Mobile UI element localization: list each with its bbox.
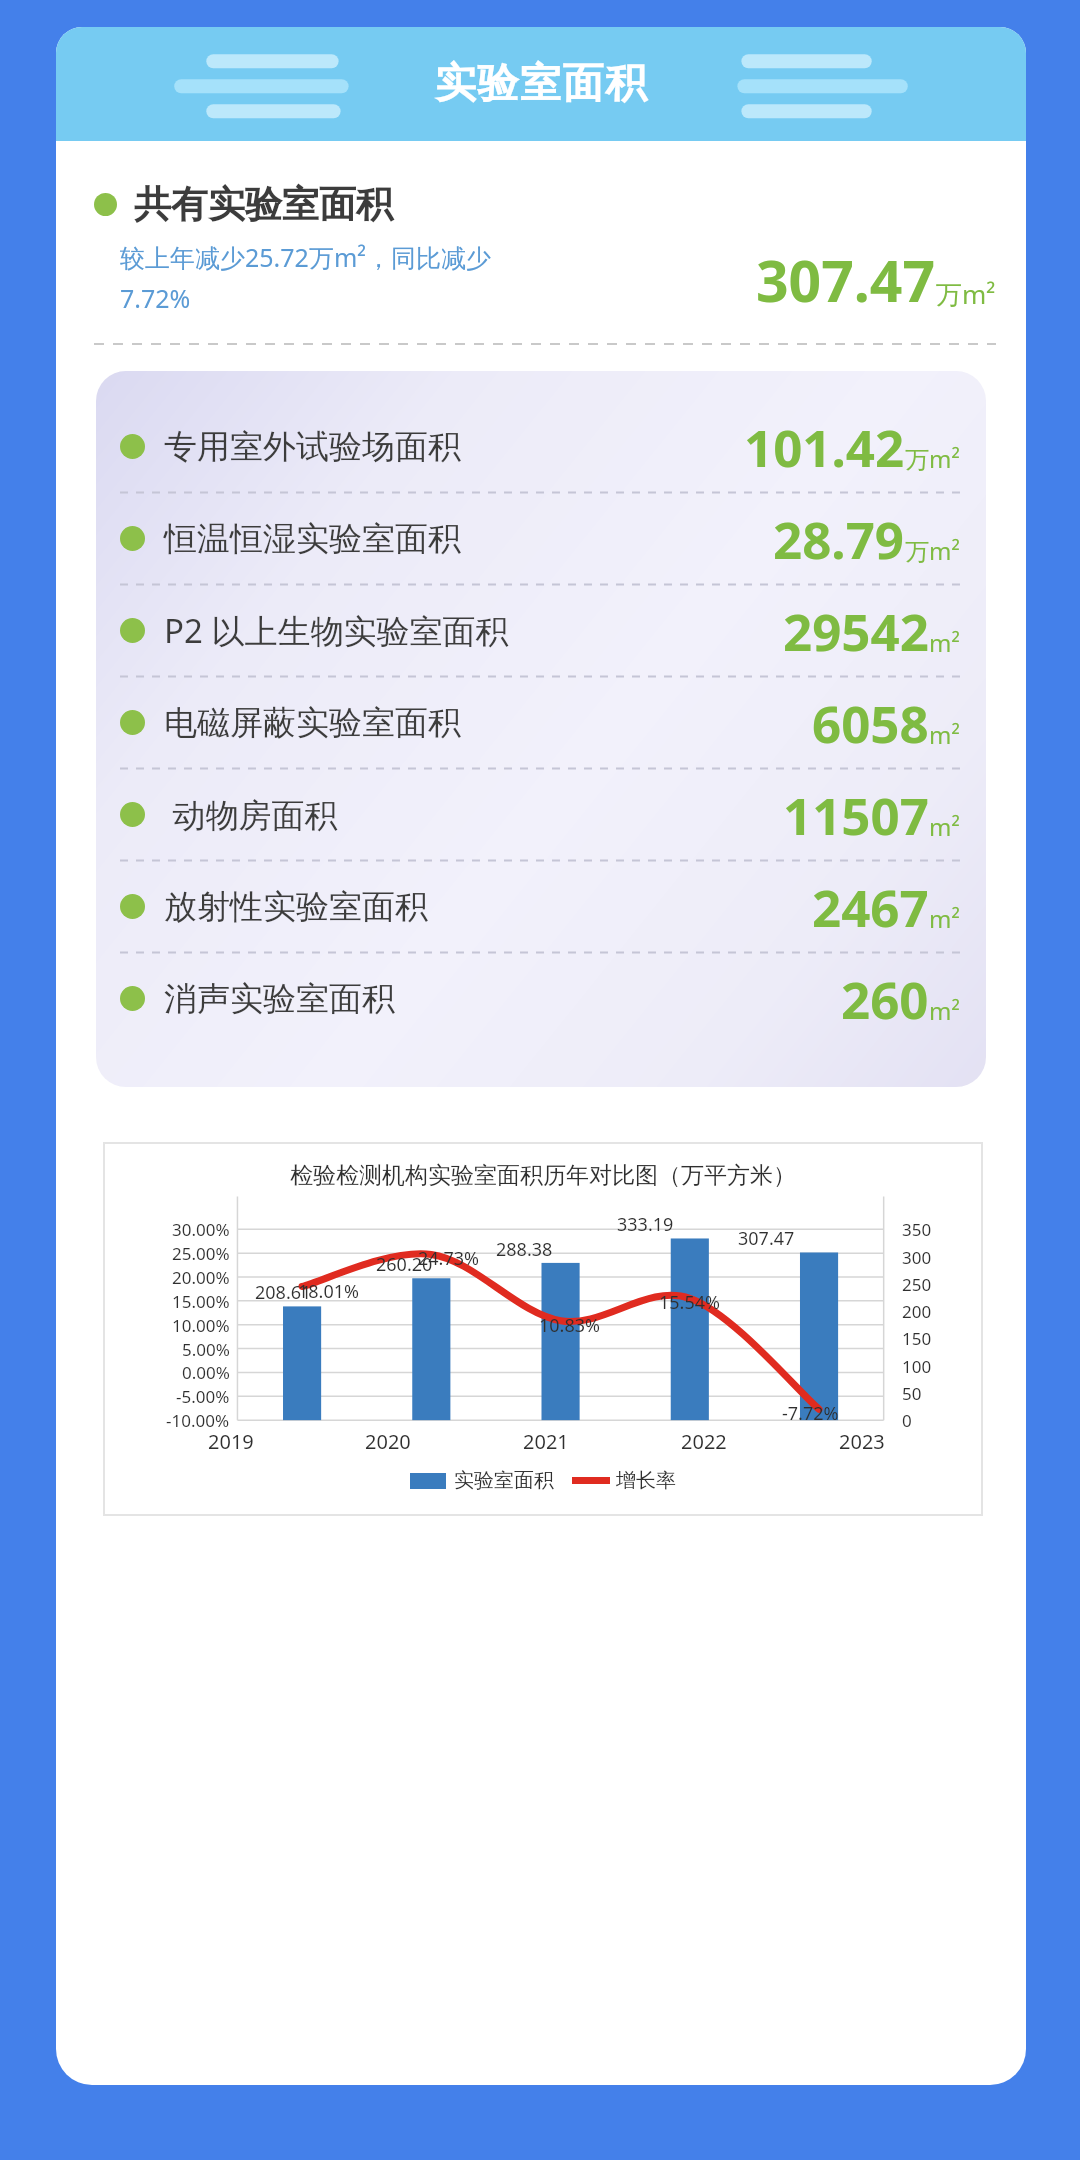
staticText: 307.47 (738, 1226, 795, 1251)
staticText: 29542 (783, 596, 929, 665)
staticText: 较上年减少25.72万m²，同比减少7.72% (120, 240, 512, 315)
staticText: 10.83% (539, 1313, 600, 1338)
staticText: 260 (841, 964, 929, 1033)
staticText: 恒温恒湿实验室面积 (164, 518, 461, 560)
staticText: 实验室面积 (435, 58, 648, 110)
staticText: 300 (902, 1246, 932, 1269)
button[interactable]: 消声实验室面积 (120, 957, 960, 1040)
staticText: 2022 (681, 1428, 727, 1455)
staticText: 电磁屏蔽实验室面积 (164, 702, 461, 744)
staticText: 2467 (812, 872, 929, 941)
staticText: 增长率 (616, 1468, 676, 1493)
staticText: m² (929, 810, 960, 843)
staticText: 15.00% (172, 1290, 230, 1313)
staticText: 动物房面积 (164, 792, 338, 837)
staticText: 放射性实验室面积 (164, 886, 428, 928)
staticText: 200 (902, 1300, 932, 1323)
staticText: 101.42 (744, 412, 905, 481)
staticText: 307.47 (756, 241, 936, 319)
button[interactable]: 电磁屏蔽实验室面积 (120, 681, 960, 764)
button[interactable]: 共有实验室面积 (94, 181, 393, 228)
staticText: -10.00% (166, 1409, 230, 1432)
staticText: m² (929, 626, 960, 659)
staticText: 250 (902, 1273, 932, 1296)
staticText: 5.00% (182, 1338, 230, 1361)
staticText: 共有实验室面积 (134, 181, 393, 228)
staticText: 260.20 (376, 1252, 433, 1277)
button[interactable]: 动物房面积 (120, 773, 960, 856)
staticText: 150 (902, 1327, 932, 1350)
staticText: 2020 (365, 1428, 411, 1455)
button[interactable]: 放射性实验室面积 (120, 865, 960, 948)
staticText: 专用室外试验场面积 (164, 426, 461, 468)
staticText: 11507 (783, 780, 929, 849)
button[interactable]: 专用室外试验场面积 (120, 405, 960, 488)
staticText: 0 (902, 1409, 912, 1432)
staticText: 实验室面积 (454, 1468, 554, 1493)
staticText: 0.00% (182, 1361, 230, 1384)
staticText: 万m² (905, 442, 960, 475)
button[interactable]: P2 以上生物实验室面积 (120, 589, 960, 672)
button[interactable]: 恒温恒湿实验室面积 (120, 497, 960, 580)
staticText: 2019 (208, 1428, 254, 1455)
staticText: 万m² (936, 276, 996, 312)
staticText: 28.79 (773, 504, 905, 573)
staticText: 检验检测机构实验室面积历年对比图（万平方米） (290, 1161, 796, 1190)
staticText: 10.00% (172, 1314, 230, 1337)
staticText: 2023 (839, 1428, 885, 1455)
staticText: 6058 (812, 688, 929, 757)
staticText: 350 (902, 1218, 932, 1241)
staticText: -7.72% (782, 1401, 839, 1426)
staticText: 100 (902, 1355, 932, 1378)
staticText: 18.01% (298, 1279, 359, 1304)
staticText: 万m² (905, 534, 960, 567)
staticText: 24.73% (418, 1246, 479, 1271)
staticText: 30.00% (172, 1218, 230, 1241)
staticText: P2 以上生物实验室面积 (164, 608, 509, 653)
staticText: 208.61 (255, 1280, 312, 1305)
staticText: 15.54% (659, 1290, 720, 1315)
staticText: 50 (902, 1382, 922, 1405)
staticText: m² (929, 902, 960, 935)
staticText: 25.00% (172, 1242, 230, 1265)
staticText: 20.00% (172, 1266, 230, 1289)
staticText: 2021 (523, 1428, 569, 1455)
staticText: m² (929, 718, 960, 751)
staticText: 消声实验室面积 (164, 978, 395, 1020)
staticText: -5.00% (176, 1385, 230, 1408)
staticText: 288.38 (496, 1237, 553, 1262)
staticText: m² (929, 994, 960, 1027)
staticText: 333.19 (617, 1212, 674, 1237)
